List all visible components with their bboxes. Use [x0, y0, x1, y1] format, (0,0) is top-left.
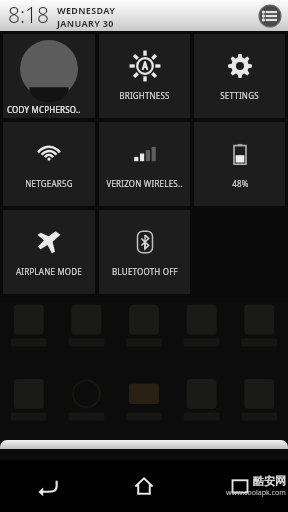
button[interactable]: Quick settings — [258, 4, 282, 28]
staticText: AIRPLANE MODE — [16, 266, 82, 277]
staticText: 8:18 — [8, 1, 50, 30]
staticText: www.coolapk.com — [226, 488, 286, 498]
staticText: BLUETOOTH OFF — [112, 266, 178, 277]
staticText: WEDNESDAY — [57, 4, 116, 16]
button[interactable]: AIRPLANE MODE — [3, 210, 95, 294]
staticText: JANUARY 30 — [57, 17, 114, 29]
button[interactable]: Home — [96, 460, 192, 512]
staticText: SETTINGS — [220, 90, 259, 101]
button[interactable]: CODY MCPHERSO.. — [3, 34, 95, 118]
button[interactable]: VERIZON WIRELES.. — [99, 122, 190, 206]
button[interactable]: Back — [0, 460, 96, 512]
button[interactable]: NETGEAR5G — [3, 122, 95, 206]
button[interactable]: BRIGHTNESS — [99, 34, 190, 118]
staticText: VERIZON WIRELES.. — [106, 178, 183, 189]
staticText: 48% — [232, 178, 249, 189]
button[interactable]: 48% — [194, 122, 285, 206]
button[interactable]: Recent apps — [192, 460, 288, 512]
button[interactable]: BLUETOOTH OFF — [99, 210, 190, 294]
staticText: BRIGHTNESS — [119, 90, 170, 101]
button[interactable]: SETTINGS — [194, 34, 285, 118]
staticText: NETGEAR5G — [25, 178, 73, 189]
staticText: 酷安网 — [253, 474, 286, 488]
staticText: CODY MCPHERSO.. — [7, 104, 81, 115]
